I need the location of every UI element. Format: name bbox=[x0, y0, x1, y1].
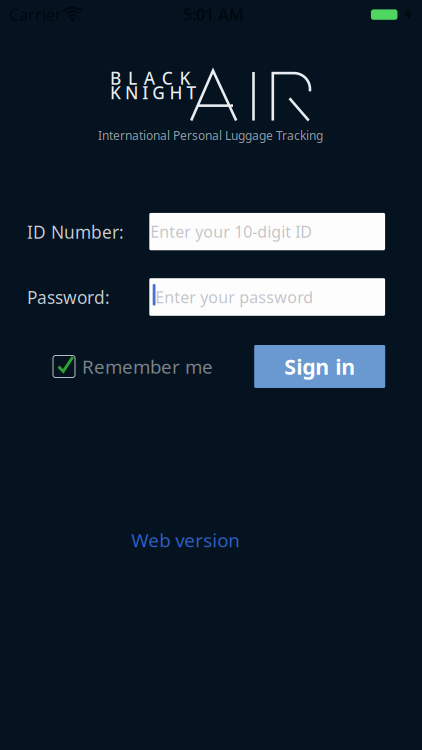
staticText: Remember me bbox=[82, 354, 213, 379]
staticText: Web version bbox=[131, 528, 240, 552]
staticText: C bbox=[162, 66, 173, 89]
button[interactable]: Enter your password bbox=[149, 278, 385, 316]
staticText: Enter your 10-digit ID bbox=[150, 221, 312, 242]
staticText: Password: bbox=[27, 286, 110, 309]
staticText: K bbox=[180, 66, 191, 89]
staticText: International Personal Luggage Tracking bbox=[98, 127, 323, 143]
staticText: T bbox=[186, 81, 196, 104]
staticText: Sign in bbox=[284, 352, 355, 381]
staticText: B bbox=[110, 66, 121, 89]
staticText: 5:01 AM bbox=[183, 4, 244, 25]
staticText: K bbox=[110, 81, 121, 104]
staticText: H bbox=[169, 81, 182, 104]
staticText: G bbox=[152, 81, 165, 104]
staticText: ID Number: bbox=[27, 220, 124, 243]
button[interactable]: Enter your 10-digit ID bbox=[149, 213, 385, 250]
staticText: L bbox=[128, 66, 137, 89]
staticText: I bbox=[142, 81, 148, 104]
staticText: A bbox=[144, 66, 155, 89]
staticText: Carrier bbox=[9, 4, 62, 25]
button[interactable]: Web version bbox=[131, 528, 240, 552]
staticText: Enter your password bbox=[155, 286, 313, 308]
staticText: N bbox=[125, 81, 138, 104]
button[interactable]: Remember me bbox=[0, 0, 422, 750]
button[interactable]: Sign in bbox=[254, 345, 385, 388]
